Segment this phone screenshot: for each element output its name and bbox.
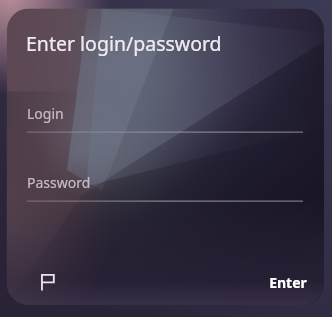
button[interactable]: Report a problem bbox=[26, 260, 70, 304]
button[interactable]: Password bbox=[27, 169, 303, 202]
button[interactable]: Login bbox=[27, 100, 303, 133]
staticText: Login bbox=[27, 104, 64, 123]
button[interactable]: Enter bbox=[257, 260, 319, 304]
staticText: Password bbox=[27, 173, 91, 192]
staticText: Enter login/password bbox=[26, 30, 222, 57]
staticText: Enter bbox=[269, 273, 307, 292]
